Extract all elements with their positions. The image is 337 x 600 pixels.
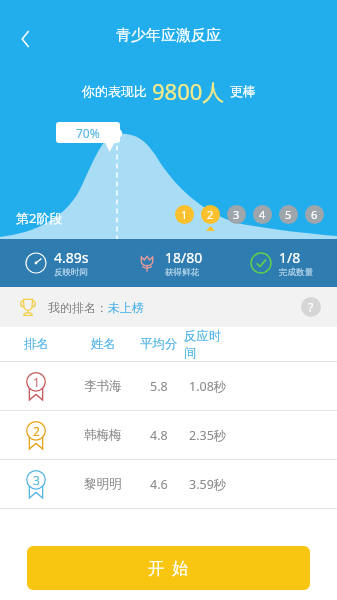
button[interactable]: 18/80 [113,248,225,278]
button[interactable]: 2 [201,205,220,224]
staticText: 70% [76,125,100,141]
staticText: 获得鲜花 [165,267,199,278]
staticText: 韩梅梅 [84,427,122,443]
staticText: 1.08秒 [189,378,227,395]
staticText: 反应时间 [184,328,231,360]
staticText: 2 [207,207,214,222]
button[interactable]: 4 [253,205,272,224]
button[interactable]: 4.89s [0,248,113,278]
staticText: 9800人 [152,76,225,106]
staticText: 5.8 [150,378,168,395]
button[interactable]: 6 [305,205,324,224]
staticText: 姓名 [91,336,116,352]
button[interactable]: 1/8 [225,248,337,278]
button[interactable]: Help [301,297,321,317]
staticText: 青少年应激反应 [0,26,337,45]
button[interactable]: 5 [279,205,298,224]
staticText: 6 [311,207,318,222]
button[interactable]: Back [10,22,44,56]
staticText: 2.35秒 [189,427,227,444]
staticText: 第2阶段 [16,209,63,227]
staticText: 3 [233,207,240,222]
staticText: 排名 [24,336,49,352]
staticText: 2 [33,423,40,439]
staticText: 1/8 [279,248,301,267]
staticText: 平均分 [140,336,178,352]
button[interactable]: 1 [175,205,194,224]
staticText: 未上榜 [108,300,144,315]
staticText: 李书海 [84,378,122,394]
button[interactable]: 我的排名： [0,287,337,327]
staticText: 完成数量 [279,267,313,278]
staticText: 1 [181,207,188,222]
staticText: 开 始 [148,557,189,579]
staticText: 黎明明 [84,476,122,492]
staticText: 18/80 [165,248,203,267]
staticText: 4.8 [150,427,168,444]
staticText: ? [308,299,314,315]
staticText: 我的排名： [48,300,108,315]
staticText: 5 [285,207,292,222]
staticText: 反映时间 [54,267,88,278]
button[interactable]: 1 [0,362,337,410]
button[interactable]: 3 [0,460,337,508]
staticText: 更棒 [230,83,256,99]
button[interactable]: 2 [0,411,337,459]
button[interactable]: 开 始 [27,546,310,590]
staticText: 1 [33,374,40,390]
button[interactable]: 3 [227,205,246,224]
staticText: 3 [33,472,40,488]
staticText: 4.89s [54,248,89,267]
staticText: 3.59秒 [189,476,227,493]
staticText: 你的表现比 [82,83,147,99]
staticText: 4 [259,207,266,222]
staticText: 4.6 [150,476,168,493]
